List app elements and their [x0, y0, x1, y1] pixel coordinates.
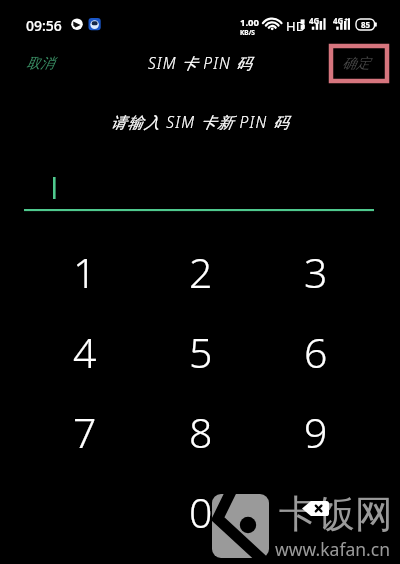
staticText: 卡饭网 — [279, 490, 393, 538]
staticText: 3 — [304, 244, 328, 300]
staticText: 9 — [304, 404, 328, 460]
button[interactable]: 5 — [143, 312, 258, 392]
staticText: HD — [286, 17, 306, 35]
staticText: 请输入 SIM 卡新 PIN 码 — [110, 111, 290, 132]
staticText: 1 — [73, 244, 97, 300]
staticText: 4G — [309, 15, 320, 26]
button[interactable]: 确定 — [324, 47, 400, 81]
button[interactable]: 8 — [143, 392, 258, 472]
staticText: 7 — [73, 404, 97, 460]
button[interactable]: 取消 — [0, 47, 80, 81]
button[interactable]: 3 — [258, 232, 373, 312]
button[interactable]: 2 — [143, 232, 258, 312]
staticText: 1.00 — [240, 16, 259, 29]
button[interactable]: 1 — [27, 232, 143, 312]
staticText: 取消 — [26, 55, 54, 73]
staticText: SIM 卡 PIN 码 — [148, 52, 253, 73]
staticText: KB/S — [240, 28, 255, 37]
staticText: 6 — [304, 324, 328, 380]
staticText: 8 — [189, 404, 213, 460]
staticText: 确定 — [342, 55, 370, 73]
button[interactable]: 9 — [258, 392, 373, 472]
staticText: www.kafan.cn — [275, 537, 390, 561]
button[interactable]: Backspace — [258, 472, 373, 552]
other: Backspace — [302, 501, 329, 516]
button[interactable]: 0 — [143, 472, 258, 552]
staticText: 85 — [361, 19, 371, 30]
staticText: 4 — [73, 324, 97, 380]
staticText: 0 — [189, 484, 213, 540]
staticText: 5 — [189, 324, 213, 380]
staticText: 4G — [333, 15, 344, 26]
staticText: 2 — [189, 244, 213, 300]
button[interactable]: 7 — [27, 392, 143, 472]
button[interactable]: 6 — [258, 312, 373, 392]
staticText: 09:56 — [26, 16, 62, 35]
button[interactable]: 4 — [27, 312, 143, 392]
